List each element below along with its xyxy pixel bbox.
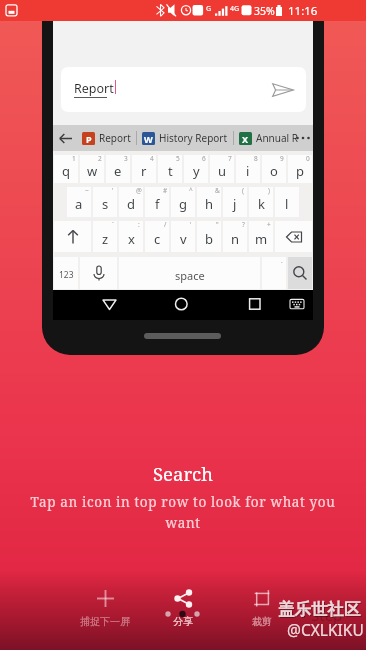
staticText: ) (268, 186, 270, 195)
staticText: j (233, 195, 237, 213)
button[interactable]: X (239, 131, 298, 145)
staticText: . (281, 256, 283, 265)
button[interactable]: i (236, 155, 260, 183)
staticText: 盖乐世社区 (279, 600, 362, 621)
staticText: z (102, 230, 109, 248)
button[interactable]: Share (143, 587, 223, 628)
button[interactable]: o (262, 155, 286, 183)
button[interactable]: y (184, 155, 208, 183)
staticText: 3 (124, 154, 128, 163)
staticText: @ (136, 186, 142, 195)
staticText: n (231, 230, 240, 248)
staticText: W (144, 133, 153, 145)
button[interactable]: p (288, 155, 312, 183)
button[interactable]: Report (61, 67, 306, 112)
button[interactable]: g (171, 187, 195, 217)
staticText: @CXLKIKU (287, 619, 364, 640)
button[interactable]: b (197, 221, 221, 252)
button[interactable]: Capture next screen (65, 587, 145, 628)
staticText: & (215, 186, 220, 195)
staticText: 8 (254, 154, 258, 163)
staticText: i (246, 162, 250, 180)
button[interactable]: a (67, 187, 91, 217)
button[interactable]: l (275, 187, 299, 217)
button[interactable]: Crop (222, 587, 302, 628)
button[interactable]: v (171, 221, 195, 252)
button[interactable]: q (54, 155, 78, 183)
staticText: v (180, 230, 187, 248)
button[interactable]: r (132, 155, 156, 183)
staticText: X (242, 133, 249, 145)
staticText: / (164, 220, 167, 229)
button[interactable]: j (223, 187, 247, 217)
button[interactable]: mic (80, 257, 117, 289)
button[interactable]: shift (54, 221, 91, 252)
staticText: Report (99, 131, 131, 145)
button[interactable]: t (158, 155, 182, 183)
staticText: 1 (72, 154, 76, 163)
button[interactable]: s (93, 187, 117, 217)
other: Send (272, 83, 294, 97)
button[interactable]: d (119, 187, 143, 217)
staticText: 11:16 (288, 3, 318, 19)
staticText: 裁剪 (252, 615, 272, 628)
staticText: 4G (230, 4, 240, 14)
staticText: space (175, 268, 205, 283)
staticText: 123 (59, 269, 74, 281)
staticText: p (296, 162, 304, 180)
staticText: ' (112, 186, 114, 195)
button[interactable]: 123 (54, 257, 78, 289)
button[interactable]: u (210, 155, 234, 183)
staticText: 4 (150, 154, 154, 163)
staticText: m (255, 230, 268, 248)
staticText: o (270, 162, 278, 180)
staticText: 0 (306, 154, 310, 163)
staticText: g (179, 195, 187, 213)
button[interactable]: search (288, 257, 312, 289)
staticText: 7 (228, 154, 232, 163)
staticText: s (102, 195, 109, 213)
staticText: x (128, 230, 135, 248)
staticText: 分享 (173, 615, 193, 628)
button[interactable]: n (223, 221, 247, 252)
staticText: y (193, 162, 200, 180)
button[interactable]: w (80, 155, 104, 183)
staticText: + (267, 220, 271, 229)
staticText: t (168, 162, 173, 180)
button[interactable]: m (249, 221, 273, 252)
staticText: c (154, 230, 161, 248)
staticText: Search (153, 461, 213, 486)
button[interactable]: e (106, 155, 130, 183)
button[interactable]: x (119, 221, 143, 252)
staticText: w (87, 162, 98, 180)
button[interactable]: space (119, 257, 260, 289)
other: Back (59, 132, 72, 145)
staticText: e (114, 162, 122, 180)
staticText: G (206, 4, 212, 14)
button[interactable]: h (197, 187, 221, 217)
button[interactable]: f (145, 187, 169, 217)
staticText: q (62, 162, 70, 180)
staticText: k (258, 195, 265, 213)
staticText: h (205, 195, 214, 213)
staticText: ` (112, 220, 114, 229)
button[interactable]: P (82, 131, 131, 145)
button[interactable]: z (93, 221, 117, 252)
staticText: 盖乐世社区 (278, 599, 361, 620)
button[interactable]: W (142, 131, 228, 145)
button[interactable]: k (249, 187, 273, 217)
staticText: ^ (189, 186, 193, 195)
staticText: a (75, 195, 83, 213)
other: More (296, 136, 310, 140)
staticText: l (285, 195, 289, 213)
button[interactable]: del (275, 221, 312, 252)
staticText: ' (190, 220, 192, 229)
staticText: r (141, 162, 147, 180)
button[interactable]: c (145, 221, 169, 252)
staticText: ? (242, 220, 245, 229)
staticText: 9 (280, 154, 284, 163)
staticText: ( (242, 186, 244, 195)
staticText: # (163, 186, 168, 195)
staticText: f (155, 195, 160, 213)
